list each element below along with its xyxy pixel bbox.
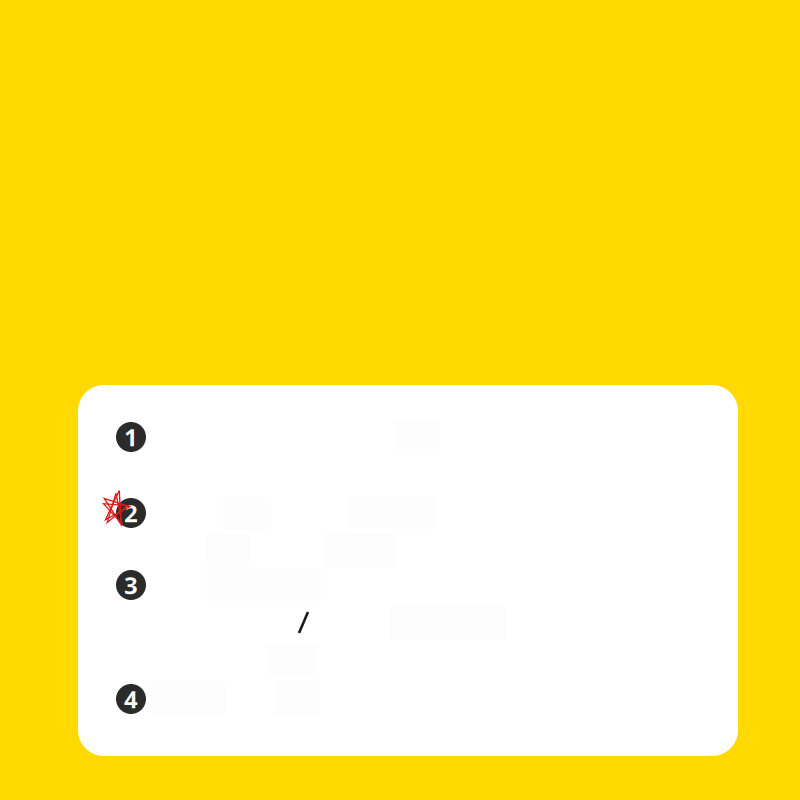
staticText: 2 bbox=[124, 497, 138, 529]
staticText: 3 bbox=[124, 569, 138, 601]
staticText: 1 bbox=[124, 421, 138, 453]
button[interactable]: 1 bbox=[116, 415, 736, 487]
button[interactable]: 3 bbox=[116, 568, 736, 642]
staticText: 4 bbox=[124, 683, 138, 715]
button[interactable]: 2 bbox=[116, 487, 736, 568]
button[interactable]: 4 bbox=[116, 642, 736, 720]
